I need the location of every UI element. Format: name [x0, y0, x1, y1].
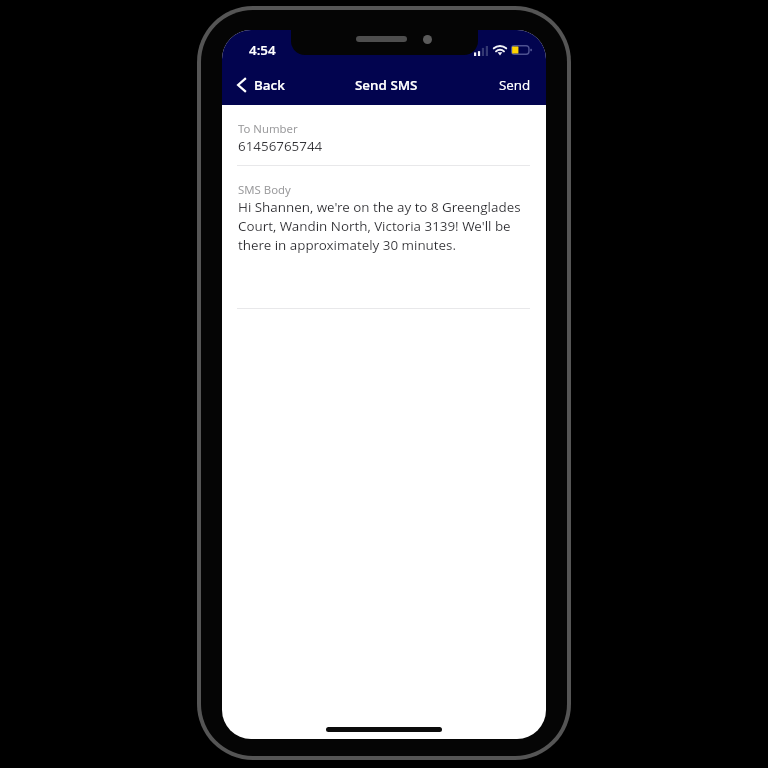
staticText: SMS Body: [238, 182, 291, 198]
button[interactable]: Send: [487, 70, 543, 100]
staticText: Hi Shannen, we're on the ay to 8 Greengl…: [238, 198, 534, 254]
other: Battery: [511, 45, 532, 55]
other: Wi-Fi: [493, 45, 507, 56]
other: Cellular signal: [474, 46, 488, 56]
staticText: Send SMS: [355, 76, 418, 94]
staticText: To Number: [238, 121, 298, 137]
staticText: Send: [499, 76, 531, 94]
staticText: Back: [254, 76, 285, 94]
staticText: 4:54: [249, 41, 276, 59]
staticText: 61456765744: [238, 137, 323, 155]
button[interactable]: 61456765744: [238, 137, 323, 155]
button[interactable]: Back: [227, 70, 297, 100]
button[interactable]: Hi Shannen, we're on the ay to 8 Greengl…: [238, 198, 534, 254]
